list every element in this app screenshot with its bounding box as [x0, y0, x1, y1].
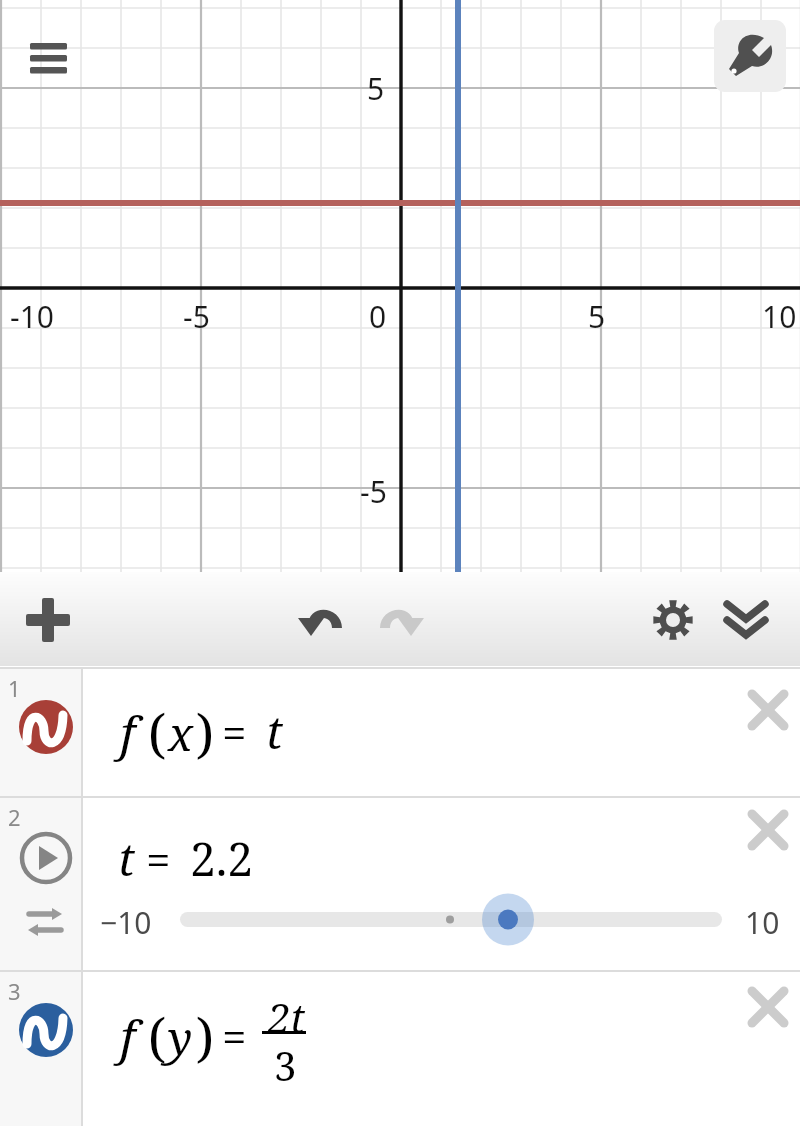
staticText: 3 — [274, 1038, 297, 1092]
staticText: x — [168, 702, 194, 765]
staticText: 10 — [762, 296, 797, 337]
button[interactable]: Delete expression — [746, 985, 790, 1029]
staticText: 2.2 — [190, 827, 253, 890]
staticText: f — [120, 1004, 136, 1069]
staticText: 10 — [745, 902, 780, 943]
staticText: = — [222, 702, 247, 762]
button[interactable]: Collapse list — [716, 590, 776, 650]
staticText: −10 — [100, 902, 152, 943]
staticText: ) — [196, 1001, 214, 1072]
staticText: ( — [148, 697, 166, 768]
staticText: 5 — [588, 296, 606, 337]
staticText: -10 — [10, 296, 54, 337]
staticText: t — [118, 827, 135, 890]
button[interactable]: Undo — [292, 590, 352, 650]
button[interactable]: Add expression — [18, 590, 78, 650]
button[interactable]: Delete expression — [746, 808, 790, 852]
staticText: -5 — [360, 471, 387, 512]
staticText: 1 — [8, 673, 21, 703]
button[interactable]: 2 — [0, 796, 800, 970]
staticText: 2t — [268, 990, 306, 1044]
button[interactable]: 3 — [0, 970, 800, 1126]
staticText: -5 — [183, 296, 210, 337]
button[interactable]: Redo — [370, 590, 430, 650]
staticText: = — [146, 829, 171, 889]
button[interactable]: 1 — [0, 667, 800, 796]
staticText: 5 — [367, 68, 385, 109]
button[interactable]: Menu — [18, 30, 80, 92]
staticText: = — [222, 1006, 247, 1066]
button[interactable]: Delete expression — [746, 688, 790, 732]
staticText: ( — [148, 1001, 166, 1072]
button[interactable]: t slider — [160, 895, 760, 945]
staticText: 3 — [8, 976, 21, 1006]
staticText: ) — [196, 697, 214, 768]
button[interactable]: Settings — [643, 590, 703, 650]
staticText: 2 — [8, 802, 21, 832]
staticText: t — [266, 700, 283, 763]
button[interactable]: Graph settings — [714, 20, 786, 92]
staticText: f — [120, 700, 136, 765]
staticText: y — [168, 1006, 193, 1069]
staticText: 0 — [369, 296, 387, 337]
